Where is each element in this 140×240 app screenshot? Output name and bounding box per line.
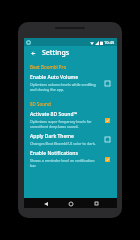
button[interactable]: Enabled xyxy=(103,155,112,164)
staticText: 8D Sound xyxy=(30,101,51,107)
staticText: Enable Auto Volume xyxy=(30,74,79,81)
staticText: Beat Boombl Pro xyxy=(30,64,67,70)
staticText: 10:45 xyxy=(104,40,115,45)
staticText: Changes Beat Boombl UI color to dark. xyxy=(30,141,96,146)
button[interactable]: Disabled xyxy=(103,135,112,144)
button[interactable]: Enabled xyxy=(103,116,112,125)
button[interactable]: Home xyxy=(66,199,75,208)
button[interactable]: Recents xyxy=(92,199,101,208)
button[interactable]: Back xyxy=(41,199,50,208)
button[interactable]: Activate 8D Sound™ xyxy=(24,109,117,131)
button[interactable]: Enable Notifications xyxy=(24,148,117,170)
button[interactable]: Apply Dark Theme xyxy=(24,131,117,148)
staticText: Apply Dark Theme xyxy=(30,133,74,140)
button[interactable]: Back xyxy=(28,48,38,58)
button[interactable]: Disabled xyxy=(103,79,112,88)
staticText: Optimizes volume levels while scrolling … xyxy=(30,82,100,92)
staticText: Settings xyxy=(42,48,70,58)
staticText: Shows a reminder level on notification b… xyxy=(30,158,100,168)
staticText: Activate 8D Sound™ xyxy=(30,111,78,118)
button[interactable]: Enable Auto Volume xyxy=(24,72,117,94)
staticText: Optimizes super frequency levels for smo… xyxy=(30,119,100,129)
staticText: Enable Notifications xyxy=(30,150,78,157)
